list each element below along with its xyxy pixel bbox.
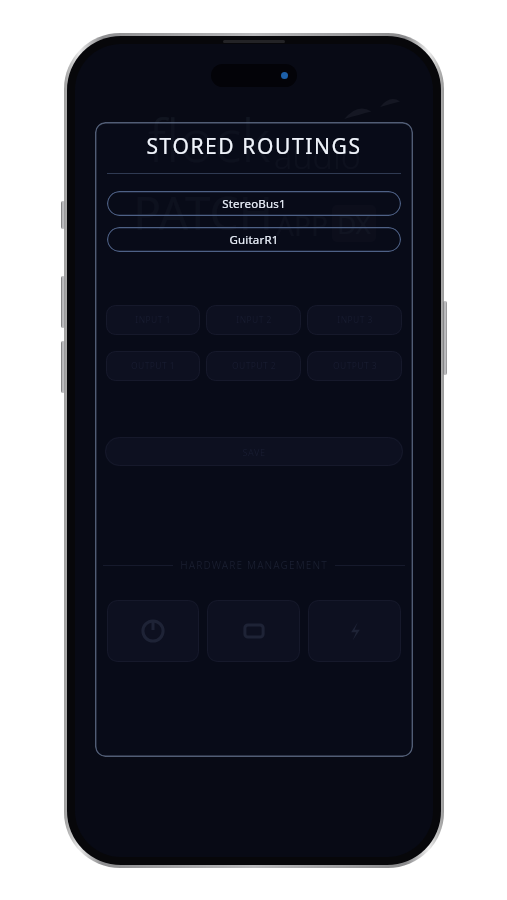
staticText: OUTPUT 3	[333, 360, 377, 372]
button[interactable]: Power	[107, 600, 199, 662]
staticText: STORED ROUTINGS	[146, 132, 362, 161]
button[interactable]: INPUT 3	[307, 305, 402, 335]
staticText: flock	[148, 100, 270, 179]
button[interactable]: INPUT 1	[106, 305, 200, 335]
staticText: OUTPUT 2	[232, 360, 276, 372]
button[interactable]: Devices	[207, 600, 300, 662]
button[interactable]: INPUT 2	[206, 305, 301, 335]
button[interactable]: OUTPUT 3	[307, 351, 402, 381]
staticText: SAVE	[242, 446, 266, 458]
staticText: OUTPUT 1	[131, 360, 175, 372]
button[interactable]: StereoBus1	[107, 191, 401, 216]
staticText: audio	[274, 133, 361, 179]
button[interactable]: OUTPUT 2	[206, 351, 301, 381]
staticText: StereoBus1	[222, 196, 286, 212]
staticText: INPUT 3	[337, 314, 373, 326]
button[interactable]: GuitarR1	[107, 227, 401, 252]
staticText: GuitarR1	[229, 232, 279, 248]
staticText: INPUT 1	[135, 314, 171, 326]
staticText: INPUT 2	[236, 314, 272, 326]
staticText: HARDWARE MANAGEMENT	[180, 558, 328, 572]
staticText: PATCH	[133, 181, 273, 244]
button[interactable]: OUTPUT 1	[106, 351, 200, 381]
staticText: DX	[337, 206, 371, 241]
staticText: APP	[276, 206, 328, 244]
